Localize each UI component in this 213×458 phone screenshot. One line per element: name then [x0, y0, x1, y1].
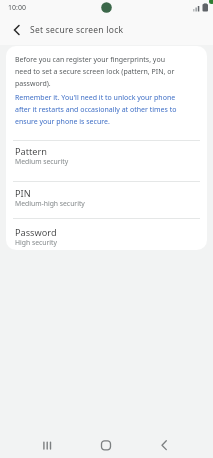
button[interactable]: PIN: [6, 182, 207, 218]
staticText: 10:00: [8, 3, 26, 13]
staticText: PIN: [15, 187, 31, 200]
button[interactable]: [92, 431, 120, 458]
staticText: Medium-high security: [15, 199, 85, 208]
staticText: after it restarts and occasionally at ot…: [15, 105, 177, 115]
button[interactable]: [6, 21, 24, 39]
staticText: Set secure screen lock: [30, 24, 124, 36]
staticText: password).: [15, 79, 51, 89]
staticText: Remember it. You'll need it to unlock yo…: [15, 93, 176, 103]
button[interactable]: [150, 431, 178, 458]
staticText: ensure your phone is secure.: [15, 117, 110, 127]
button[interactable]: Pattern: [6, 139, 207, 181]
staticText: Medium security: [15, 157, 69, 166]
button[interactable]: Password: [6, 219, 207, 250]
staticText: Pattern: [15, 145, 47, 158]
staticText: Before you can register your fingerprint…: [15, 55, 165, 65]
staticText: need to set a secure screen lock (patter…: [15, 67, 175, 77]
staticText: High security: [15, 238, 57, 247]
button[interactable]: [33, 431, 61, 458]
staticText: Password: [15, 226, 57, 239]
